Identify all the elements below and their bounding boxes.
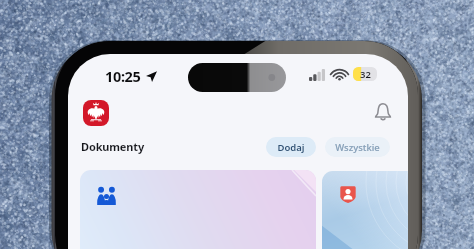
staticText: Dokumenty bbox=[81, 139, 145, 154]
staticText: Wszystkie bbox=[335, 141, 380, 154]
button[interactable]: Powiadomienia bbox=[374, 102, 392, 120]
button[interactable]: Dodaj bbox=[266, 137, 316, 157]
staticText: 10:25 bbox=[105, 66, 141, 86]
button[interactable]: mObywatel bbox=[83, 100, 109, 126]
button[interactable]: Dokument bbox=[322, 171, 408, 249]
staticText: Dodaj bbox=[277, 141, 305, 154]
button[interactable]: Rodzina bbox=[80, 170, 316, 249]
button[interactable]: Wszystkie bbox=[325, 137, 390, 157]
staticText: 32 bbox=[360, 68, 371, 81]
